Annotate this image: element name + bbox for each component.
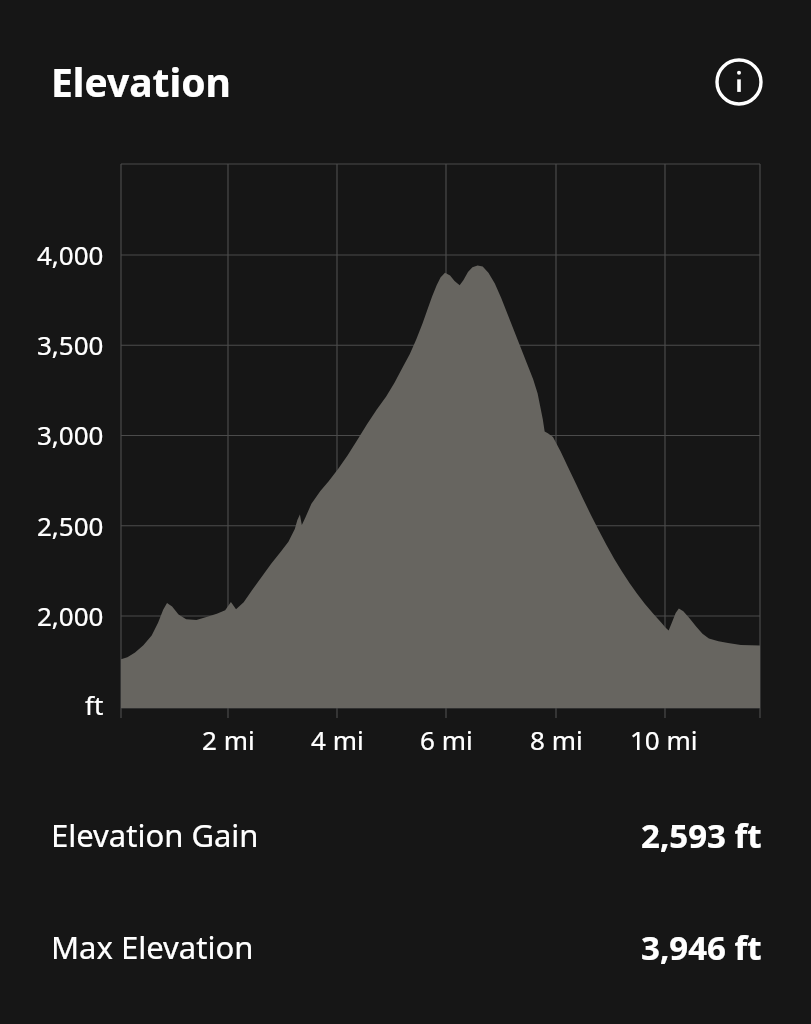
staticText: 4 mi bbox=[311, 722, 364, 757]
button[interactable]: Max Elevation bbox=[0, 918, 811, 976]
staticText: Elevation bbox=[51, 55, 231, 108]
button[interactable]: Info bbox=[715, 58, 763, 106]
staticText: 2 mi bbox=[202, 722, 255, 757]
staticText: 2,000 bbox=[37, 598, 104, 633]
staticText: Elevation Gain bbox=[51, 814, 259, 856]
staticText: 8 mi bbox=[530, 722, 583, 757]
staticText: 3,500 bbox=[37, 327, 104, 362]
staticText: 6 mi bbox=[420, 722, 473, 757]
staticText: 10 mi bbox=[630, 722, 698, 757]
staticText: 2,593 ft bbox=[641, 813, 762, 858]
staticText: Max Elevation bbox=[51, 926, 254, 968]
button[interactable]: Elevation Gain bbox=[0, 806, 811, 864]
staticText: ft bbox=[85, 687, 104, 722]
staticText: 2,500 bbox=[37, 508, 104, 543]
staticText: 4,000 bbox=[37, 237, 104, 272]
staticText: 3,000 bbox=[37, 417, 104, 452]
staticText: 3,946 ft bbox=[641, 925, 762, 970]
